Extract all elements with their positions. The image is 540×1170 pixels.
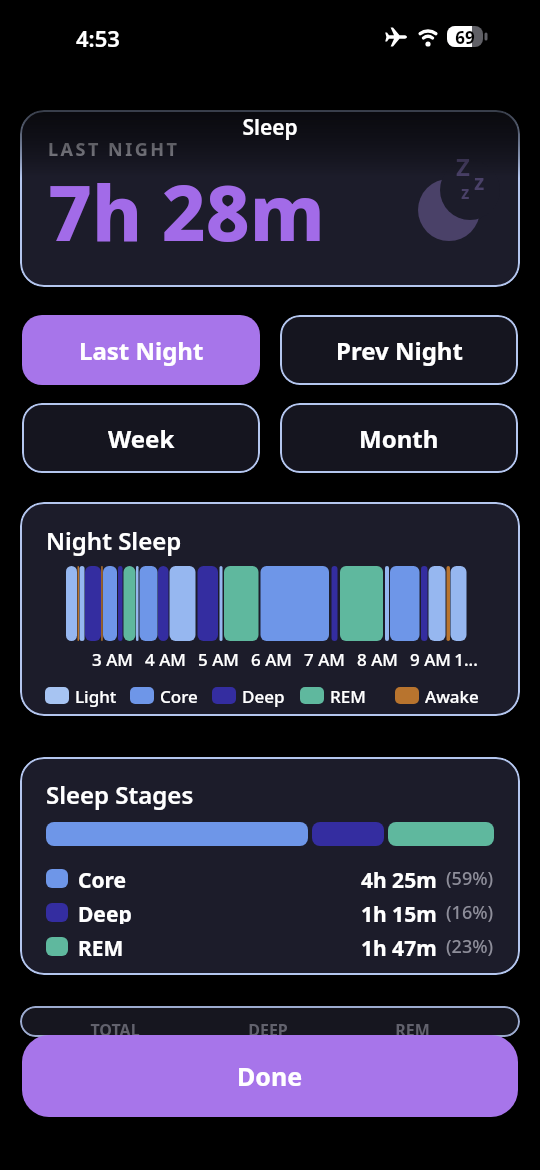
staticText: z (474, 168, 485, 197)
button[interactable]: Done (22, 1035, 518, 1117)
staticText: 5 AM (198, 648, 239, 670)
staticText: 4:53 (76, 23, 120, 53)
staticText: TOTAL (90, 1019, 140, 1041)
staticText: 1h 47m (361, 934, 437, 958)
button[interactable] (20, 502, 520, 716)
staticText: 6 AM (251, 648, 292, 670)
staticText: Last Night (79, 334, 204, 367)
staticText: Done (237, 1059, 303, 1093)
staticText: Week (108, 422, 175, 455)
button[interactable]: Month (280, 403, 518, 473)
staticText: (16%) (446, 900, 494, 924)
staticText: 4h 25m (361, 866, 437, 890)
staticText: z (461, 181, 470, 204)
staticText: Deep (242, 685, 285, 708)
staticText: Sleep (242, 113, 298, 142)
staticText: 7h 28m (48, 160, 325, 264)
staticText: 3 AM (92, 648, 133, 670)
staticText: Prev Night (336, 334, 463, 367)
staticText: Z (456, 150, 470, 183)
staticText: Night Sleep (46, 524, 182, 557)
button[interactable] (20, 757, 520, 975)
staticText: Deep (78, 900, 132, 924)
staticText: LAST NIGHT (48, 137, 180, 162)
staticText: 1... (454, 648, 478, 670)
button[interactable] (20, 110, 520, 287)
staticText: REM (330, 685, 366, 708)
staticText: Month (359, 422, 439, 455)
staticText: 7 AM (304, 648, 345, 670)
button[interactable]: Week (22, 403, 260, 473)
staticText: (23%) (446, 934, 494, 958)
staticText: Sleep Stages (46, 778, 194, 811)
button[interactable]: Last Night (22, 315, 260, 385)
staticText: 1h 15m (361, 900, 437, 924)
staticText: (59%) (446, 866, 494, 890)
staticText: 4 AM (145, 648, 186, 670)
staticText: Core (78, 866, 127, 890)
staticText: 9 AM (410, 648, 451, 670)
staticText: REM (78, 934, 124, 958)
staticText: 69 (455, 26, 475, 47)
staticText: Awake (425, 685, 479, 708)
staticText: Core (160, 685, 198, 708)
button[interactable]: Prev Night (280, 315, 518, 385)
staticText: DEEP (248, 1019, 288, 1041)
staticText: REM (395, 1019, 430, 1041)
staticText: Light (75, 685, 117, 708)
staticText: 8 AM (357, 648, 398, 670)
